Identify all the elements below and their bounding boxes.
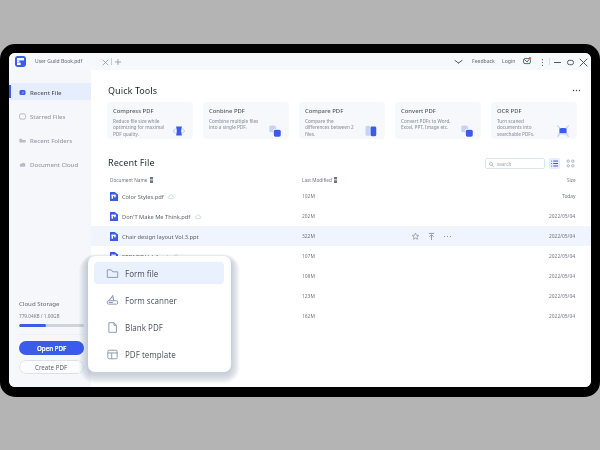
button[interactable]: New tab xyxy=(114,58,122,66)
staticText: Convert PDFs to Word, Excel, PPT, Image … xyxy=(401,118,453,131)
button[interactable]: Create PDF xyxy=(19,360,84,374)
button[interactable]: Minimize xyxy=(553,58,561,66)
staticText: Cloud Storage xyxy=(19,299,60,307)
staticText: 2022/05/04 xyxy=(549,213,576,220)
button[interactable]: Login xyxy=(502,58,516,65)
button[interactable]: Close tab xyxy=(101,58,109,66)
staticText: 102M xyxy=(302,193,315,200)
button[interactable]: Convert PDF xyxy=(395,102,481,139)
button[interactable]: Color Styles.pdf xyxy=(91,186,591,206)
staticText: 2022/05/04 xyxy=(549,313,576,320)
staticText: Recent Folders xyxy=(30,136,73,144)
button[interactable]: Form file xyxy=(94,262,224,284)
staticText: Recent File xyxy=(30,88,62,96)
button[interactable]: OCR PDF xyxy=(491,102,577,139)
button[interactable]: Feedback xyxy=(472,58,495,65)
staticText: Today xyxy=(562,193,576,200)
button[interactable]: Favourite xyxy=(411,232,420,241)
button[interactable]: Maximize xyxy=(566,58,574,66)
staticText: Chair design layout Vol.3.ppt xyxy=(122,233,199,241)
button[interactable]: Conbine PDF xyxy=(203,102,289,139)
staticText: 322M xyxy=(302,233,315,240)
button[interactable]: Recent Folders xyxy=(9,131,91,148)
staticText: Combine multiple files into a single PDF… xyxy=(209,118,261,131)
button[interactable]: Open PDF xyxy=(19,341,84,355)
staticText: Blank PDF xyxy=(125,322,163,333)
staticText: PDF template xyxy=(125,349,176,360)
button[interactable]: Compare PDF xyxy=(299,102,385,139)
staticText: Color Styles.pdf xyxy=(122,193,164,201)
staticText: Convert PDF xyxy=(401,107,436,115)
staticText: User Guild Book.pdf xyxy=(35,58,83,65)
staticText: Turn scaned documents into searchable PD… xyxy=(497,118,549,138)
button[interactable]: Brand guideline.pdf xyxy=(91,266,591,286)
staticText: 162M xyxy=(302,313,315,320)
staticText: ETONEB Vol.4.ppt xyxy=(122,253,169,261)
staticText: 2022/05/04 xyxy=(549,293,576,300)
button[interactable]: Grid view xyxy=(565,158,576,169)
staticText: Feedback xyxy=(472,58,495,65)
button[interactable]: Messages xyxy=(523,57,532,66)
button[interactable]: Expand xyxy=(454,57,463,66)
button[interactable]: Close xyxy=(579,58,587,66)
button[interactable]: PDF template xyxy=(94,343,224,365)
staticText: Compress PDF xyxy=(113,107,154,115)
button[interactable]: Don'T Make Me Think.pdf xyxy=(91,206,591,226)
button[interactable]: Compress PDF xyxy=(107,102,193,139)
button[interactable]: Starred Files xyxy=(9,107,91,124)
staticText: Compare PDF xyxy=(305,107,344,115)
staticText: Market research.pdf xyxy=(122,293,176,301)
button[interactable]: Menu xyxy=(538,58,546,66)
staticText: Brand guideline.pdf xyxy=(122,273,175,281)
staticText: 107M xyxy=(302,253,315,260)
staticText: Size xyxy=(567,177,576,183)
button[interactable]: Upload xyxy=(427,232,436,241)
staticText: Quick Tools xyxy=(108,84,158,96)
staticText: Login xyxy=(502,58,516,65)
staticText: Form scanner xyxy=(125,295,177,306)
button[interactable]: More xyxy=(571,85,581,95)
button[interactable]: Market research.pdf xyxy=(91,286,591,306)
staticText: Recent File xyxy=(108,156,155,168)
staticText: Open PDF xyxy=(37,344,67,352)
button[interactable]: List view xyxy=(549,158,560,169)
staticText: Form file xyxy=(125,268,159,279)
staticText: 2022/05/04 xyxy=(549,273,576,280)
staticText: Starred Files xyxy=(30,112,66,120)
staticText: Don'T Make Me Think.pdf xyxy=(122,213,191,221)
staticText: 202M xyxy=(302,213,315,220)
button[interactable]: Blank PDF xyxy=(94,316,224,338)
button[interactable]: ETONEB Vol.4.ppt xyxy=(91,246,591,266)
staticText: Conbine PDF xyxy=(209,107,245,115)
staticText: Create PDF xyxy=(35,363,68,371)
staticText: OCR PDF xyxy=(497,107,522,115)
staticText: search xyxy=(497,161,512,167)
button[interactable]: Chair design layout Vol.3.ppt xyxy=(91,226,591,246)
button[interactable]: search xyxy=(485,158,545,169)
staticText: 779.04KB / 1.00GB xyxy=(19,313,60,319)
staticText: Document Name xyxy=(110,177,148,183)
staticText: Document Cloud xyxy=(30,160,79,168)
staticText: 2022/05/04 xyxy=(549,253,576,260)
button[interactable]: Form scanner xyxy=(94,289,224,311)
button[interactable]: Recent File xyxy=(9,83,91,100)
button[interactable]: Document Cloud xyxy=(9,155,91,172)
staticText: 123M xyxy=(302,293,315,300)
staticText: 2022/05/04 xyxy=(549,233,576,240)
button[interactable]: More options xyxy=(443,232,452,241)
staticText: Last Modified xyxy=(302,177,332,183)
staticText: 108M xyxy=(302,273,315,280)
staticText: Compare the differences between 2 files. xyxy=(305,118,357,138)
button[interactable]: Annual report.pdf xyxy=(91,306,591,326)
staticText: Reduce file size while optimizing for ma… xyxy=(113,118,165,138)
